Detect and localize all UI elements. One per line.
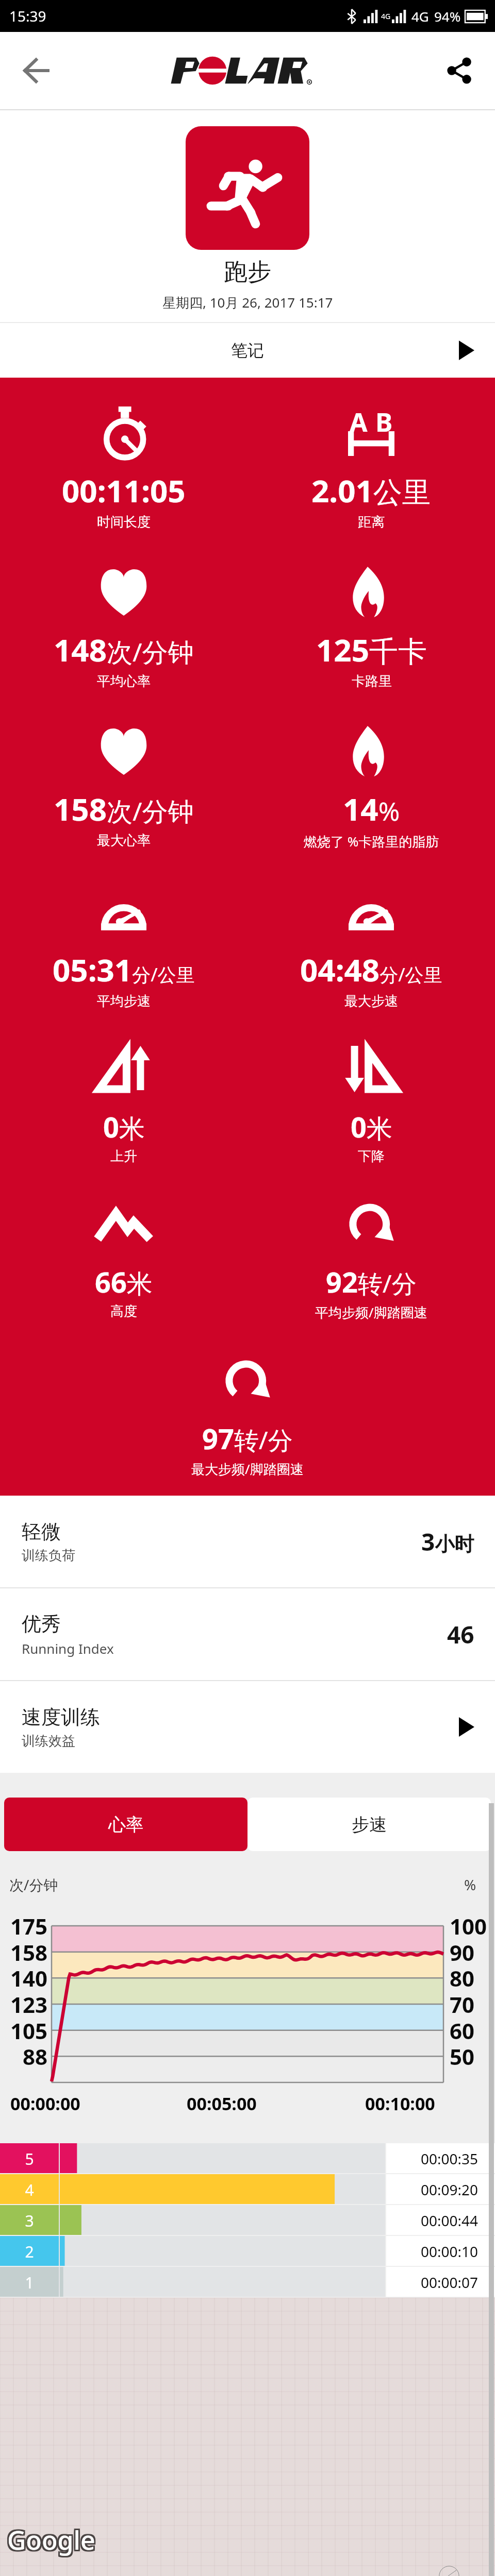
staticText: 距离 — [358, 514, 385, 531]
staticText: Google — [7, 2521, 95, 2556]
button[interactable]: 优秀 — [0, 1588, 495, 1680]
staticText: 4G — [381, 11, 391, 21]
staticText: Google — [9, 2522, 97, 2557]
button[interactable]: 心率 — [4, 1798, 247, 1851]
button[interactable]: 步速 — [247, 1798, 491, 1851]
staticText: 46 — [447, 1618, 474, 1651]
staticText: 97转/分 — [202, 1419, 293, 1458]
staticText: 125千卡 — [316, 629, 427, 671]
staticText: 50 — [450, 2042, 475, 2071]
staticText: 3小时 — [421, 1526, 474, 1558]
staticText: B — [375, 404, 393, 439]
staticText: 平均心率 — [97, 673, 151, 690]
staticText: Google — [7, 2522, 95, 2557]
staticText: 100 — [450, 1911, 487, 1941]
staticText: Google — [9, 2524, 97, 2559]
staticText: 下降 — [358, 1148, 385, 1165]
staticText: 00:09:20 — [421, 2180, 478, 2199]
staticText: 148次/分钟 — [54, 629, 194, 671]
staticText: 66米 — [95, 1263, 153, 1301]
staticText: 平均步速 — [97, 993, 151, 1010]
staticText: 105 — [0, 2016, 47, 2045]
staticText: 94% — [434, 7, 461, 25]
staticText: 速度训练 — [22, 1705, 100, 1730]
staticText: 00:00:35 — [421, 2149, 478, 2168]
staticText: 00:00:44 — [421, 2211, 478, 2230]
staticText: 最大步频/脚踏圈速 — [191, 1460, 304, 1478]
staticText: 123 — [0, 1990, 47, 2019]
staticText: 跑步 — [224, 257, 271, 287]
staticText: 90 — [450, 1938, 475, 1967]
staticText: 3 — [0, 2210, 59, 2231]
staticText: 00:10:00 — [365, 2092, 435, 2115]
staticText: 4G — [411, 7, 429, 25]
staticText: 平均步频/脚踏圈速 — [315, 1303, 427, 1321]
staticText: Google — [7, 2524, 95, 2559]
staticText: 5 — [0, 2148, 59, 2170]
staticText: Google — [6, 2522, 94, 2557]
staticText: 00:00:10 — [421, 2242, 478, 2261]
staticText: 00:00:07 — [421, 2273, 478, 2292]
staticText: 时间长度 — [97, 514, 151, 531]
staticText: 158次/分钟 — [54, 788, 194, 830]
staticText: 心率 — [108, 1814, 143, 1836]
staticText: % — [464, 1875, 476, 1894]
staticText: 次/分钟 — [9, 1875, 58, 1894]
staticText: 高度 — [110, 1303, 137, 1320]
staticText: 14% — [343, 788, 400, 830]
staticText: 训练负荷 — [22, 1547, 75, 1564]
staticText: 15:39 — [9, 6, 46, 26]
staticText: 00:05:00 — [187, 2092, 257, 2115]
staticText: 00:11:05 — [62, 469, 186, 512]
staticText: 175 — [0, 1911, 47, 1941]
staticText: 星期四, 10月 26, 2017 15:17 — [162, 293, 333, 312]
staticText: 80 — [450, 1963, 475, 1993]
button[interactable]: Share — [423, 32, 495, 109]
staticText: 158 — [0, 1938, 47, 1967]
staticText: 88 — [0, 2042, 47, 2071]
button[interactable]: 笔记 — [0, 323, 495, 378]
staticText: 00:00:00 — [10, 2092, 80, 2115]
staticText: 训练效益 — [22, 1733, 75, 1750]
staticText: 2.01公里 — [311, 469, 431, 512]
staticText: 优秀 — [22, 1612, 61, 1636]
staticText: 2 — [0, 2241, 59, 2262]
staticText: 60 — [450, 2016, 475, 2045]
staticText: 4 — [0, 2179, 59, 2200]
staticText: 最大心率 — [97, 832, 151, 849]
staticText: 70 — [450, 1990, 475, 2019]
staticText: 05:31分/公里 — [53, 948, 195, 991]
staticText: 卡路里 — [352, 673, 392, 690]
staticText: 最大步速 — [344, 993, 398, 1010]
staticText: 92转/分 — [326, 1263, 417, 1301]
staticText: 140 — [0, 1963, 47, 1993]
staticText: 笔记 — [231, 340, 264, 361]
staticText: 步速 — [352, 1814, 387, 1836]
staticText: 轻微 — [22, 1519, 61, 1544]
staticText: 0米 — [351, 1108, 392, 1146]
staticText: Running Index — [22, 1639, 114, 1657]
staticText: 上升 — [110, 1148, 137, 1165]
button[interactable]: 速度训练 — [0, 1681, 495, 1773]
staticText: Google — [6, 2524, 94, 2559]
button[interactable]: 轻微 — [0, 1496, 495, 1587]
staticText: 04:48分/公里 — [300, 948, 442, 991]
staticText: Google — [6, 2521, 94, 2556]
staticText: Google — [9, 2521, 97, 2556]
staticText: A — [350, 404, 368, 439]
staticText: 0米 — [103, 1108, 145, 1146]
staticText: 1 — [0, 2272, 59, 2293]
button[interactable]: Back — [0, 32, 72, 109]
staticText: 燃烧了 %卡路里的脂肪 — [304, 832, 439, 851]
staticText: Google — [7, 2522, 95, 2557]
